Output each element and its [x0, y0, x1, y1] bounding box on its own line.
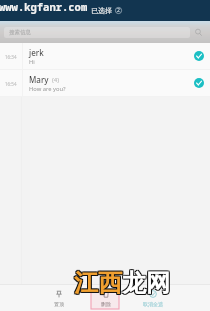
button[interactable]: 置顶: [35, 285, 82, 311]
staticText: 2: [117, 7, 120, 14]
staticText: 删除: [101, 301, 111, 307]
button[interactable]: 取消全选: [129, 285, 176, 311]
staticText: 西: [97, 269, 121, 299]
staticText: 16:54: [5, 81, 17, 87]
staticText: 西: [99, 268, 123, 298]
staticText: 网: [146, 267, 170, 297]
staticText: 江: [74, 267, 98, 297]
staticText: 网: [145, 267, 169, 297]
staticText: 西: [99, 269, 123, 299]
staticText: How are you?: [29, 85, 66, 93]
staticText: 江: [73, 268, 97, 298]
staticText: 龙: [122, 269, 146, 299]
staticText: 龙: [122, 267, 146, 297]
staticText: 龙: [123, 268, 147, 298]
staticText: 江: [75, 269, 99, 299]
staticText: 已选择: [91, 6, 112, 15]
button[interactable]: 16:34: [0, 43, 210, 69]
other: Selected: [194, 78, 204, 88]
staticText: 龙: [121, 269, 145, 299]
button[interactable]: 删除: [82, 285, 129, 311]
staticText: 网: [145, 268, 169, 298]
staticText: Mary: [29, 74, 49, 85]
staticText: 龙: [123, 269, 147, 299]
other: Selected: [194, 51, 204, 61]
staticText: 西: [99, 267, 123, 297]
button[interactable]: 已选择: [91, 6, 122, 15]
staticText: 搜索信息: [9, 29, 31, 36]
staticText: 江: [74, 269, 98, 299]
staticText: 西: [97, 268, 121, 298]
button[interactable]: 16:54: [0, 70, 210, 96]
staticText: 江: [74, 268, 98, 298]
staticText: 龙: [121, 267, 145, 297]
staticText: 江: [73, 269, 97, 299]
staticText: jerk: [29, 47, 44, 58]
staticText: 西: [98, 267, 122, 297]
staticText: 江: [75, 268, 99, 298]
staticText: 网: [147, 267, 171, 297]
other: Search: [194, 28, 203, 37]
staticText: 网: [146, 269, 170, 299]
staticText: 网: [147, 269, 171, 299]
staticText: Hi: [29, 58, 35, 66]
staticText: 西: [97, 267, 121, 297]
staticText: 取消全选: [143, 301, 163, 307]
staticText: 江: [75, 267, 99, 297]
staticText: 西: [98, 268, 122, 298]
staticText: 网: [145, 269, 169, 299]
staticText: 16:34: [5, 54, 17, 60]
staticText: 江: [73, 267, 97, 297]
staticText: 西: [98, 269, 122, 299]
staticText: 置顶: [54, 301, 64, 307]
staticText: 网: [146, 268, 170, 298]
button[interactable]: 搜索信息: [4, 27, 190, 38]
staticText: 龙: [122, 268, 146, 298]
staticText: 龙: [123, 267, 147, 297]
staticText: www.kgfanr.com: [0, 0, 88, 14]
staticText: 网: [147, 268, 171, 298]
staticText: 龙: [121, 268, 145, 298]
staticText: (4): [52, 76, 60, 84]
